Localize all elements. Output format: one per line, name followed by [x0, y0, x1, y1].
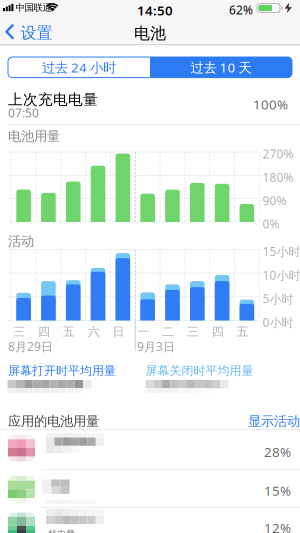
button[interactable]: 过去 24 小时 — [8, 57, 150, 78]
staticText: 过去 24 小时 — [42, 58, 116, 76]
staticText: 90% — [262, 193, 286, 209]
staticText: 100% — [253, 95, 288, 113]
staticText: 一 — [137, 324, 149, 339]
staticText: 10小时 — [262, 267, 300, 283]
staticText: 0小时 — [262, 314, 293, 330]
staticText: 显示活动 — [248, 413, 300, 429]
button[interactable]: 返回设置 — [5, 17, 65, 47]
staticText: 62% — [229, 2, 253, 18]
staticText: 180% — [262, 169, 293, 185]
staticText: 三 — [187, 324, 199, 339]
staticText: 过去 10 天 — [190, 58, 251, 76]
staticText: 270% — [262, 146, 293, 162]
staticText: 三 — [13, 324, 25, 339]
staticText: 耗电量 — [48, 528, 75, 533]
button[interactable]: 12% — [0, 506, 300, 533]
staticText: 5小时 — [262, 291, 293, 307]
staticText: 中国联通 — [15, 2, 51, 13]
staticText: 五 — [236, 324, 248, 339]
button[interactable]: 显示活动 — [248, 413, 300, 429]
staticText: 五 — [63, 324, 75, 339]
staticText: 28% — [264, 443, 291, 461]
button[interactable]: 屏幕关闭时平均用量 — [145, 363, 253, 378]
button[interactable]: 过去 10 天 — [150, 57, 292, 78]
staticText: 六 — [88, 324, 100, 339]
staticText: 四 — [212, 324, 224, 339]
staticText: 屏幕关闭时平均用量 — [145, 363, 253, 378]
staticText: 屏幕打开时平均用量 — [8, 363, 116, 378]
staticText: 07:50 — [8, 105, 39, 121]
button[interactable]: 28% — [0, 430, 300, 468]
staticText: 电池 — [134, 23, 166, 43]
staticText: 设置 — [20, 23, 52, 43]
staticText: 12% — [264, 519, 291, 533]
staticText: 0% — [262, 216, 279, 232]
staticText: 14:50 — [137, 1, 173, 19]
staticText: 日 — [112, 324, 124, 339]
button[interactable]: 15% — [0, 469, 300, 507]
staticText: 15小时 — [262, 243, 300, 259]
staticText: 四 — [38, 324, 50, 339]
staticText: 15% — [264, 482, 291, 499]
staticText: 活动 — [8, 233, 34, 249]
button[interactable]: 屏幕打开时平均用量 — [8, 363, 116, 378]
staticText: 8月29日 — [8, 338, 53, 354]
staticText: 二 — [162, 324, 174, 339]
staticText: 上次充电电量 — [8, 90, 98, 108]
staticText: 应用的电池用量 — [8, 413, 99, 429]
staticText: 9月3日 — [137, 338, 175, 354]
staticText: 电池用量 — [8, 128, 60, 144]
